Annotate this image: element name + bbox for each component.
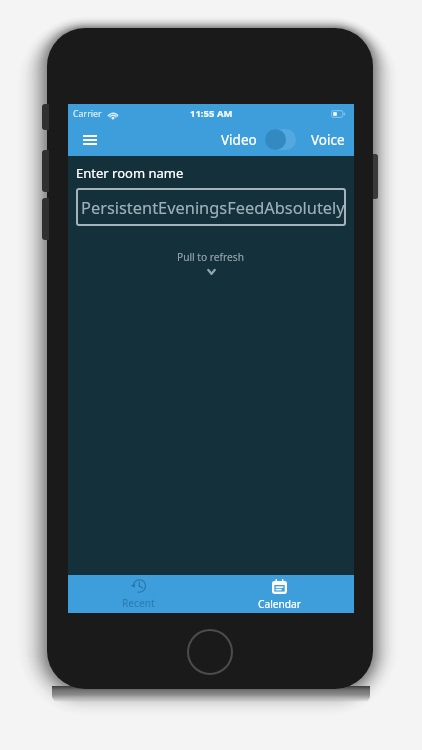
staticText: 11:55 AM [190, 107, 233, 120]
button[interactable]: Calendar [209, 575, 350, 613]
staticText: Carrier [73, 108, 102, 120]
button[interactable]: PersistentEveningsFeedAbsolutely [76, 188, 346, 226]
staticText: PersistentEveningsFeedAbsolutely [81, 196, 345, 218]
staticText: Calendar [258, 597, 302, 611]
staticText: Pull to refresh [177, 250, 245, 264]
button[interactable]: Video [221, 131, 257, 149]
staticText: Enter room name [76, 164, 184, 182]
button[interactable]: Voice [311, 131, 345, 149]
button[interactable]: Recent [68, 575, 209, 613]
button[interactable]: Open navigation menu [78, 128, 102, 152]
button[interactable]: Switch between video and voice [265, 129, 296, 150]
staticText: Recent [122, 596, 155, 610]
